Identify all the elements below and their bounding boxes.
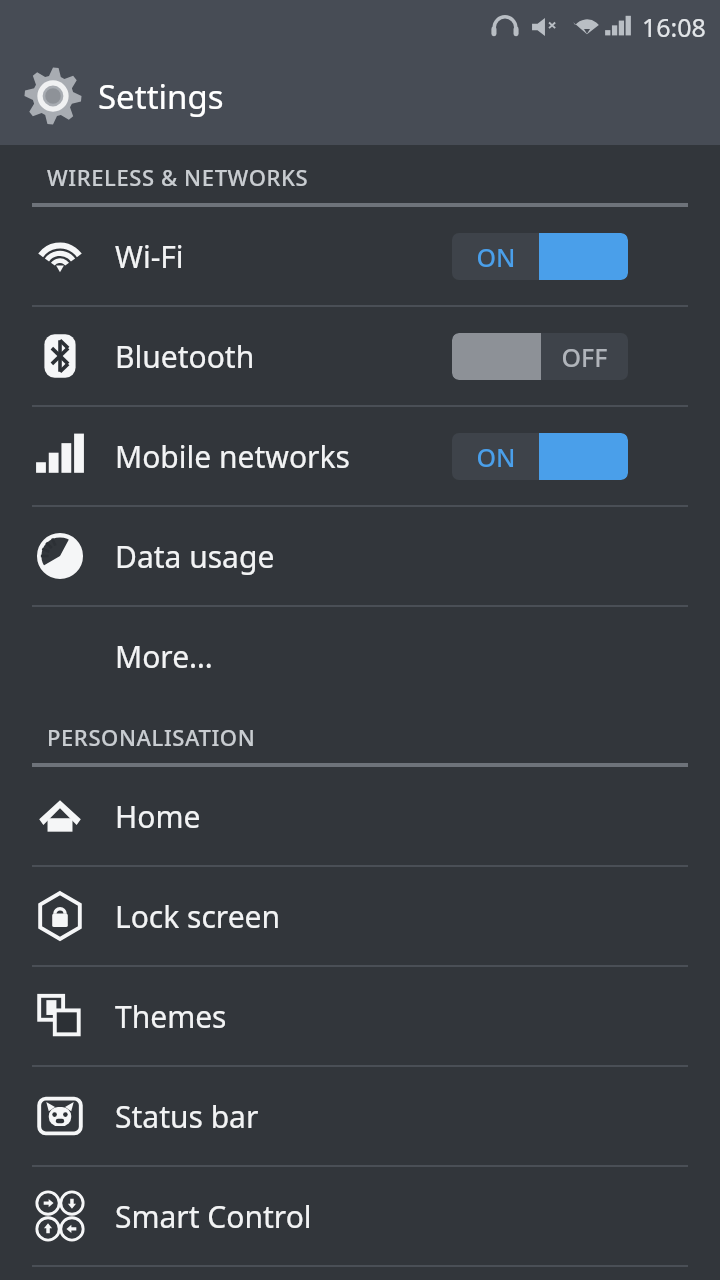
button[interactable]: Lock screen xyxy=(0,867,720,965)
button[interactable]: Toggle on xyxy=(452,233,628,280)
staticText: Bluetooth xyxy=(115,336,255,377)
staticText: Mobile networks xyxy=(115,436,350,477)
button[interactable]: Toggle on xyxy=(452,433,628,480)
staticText: Settings xyxy=(98,74,224,119)
button[interactable]: Home xyxy=(0,767,720,865)
staticText: ON xyxy=(476,440,516,474)
button[interactable]: More… xyxy=(0,607,720,705)
staticText: WIRELESS & NETWORKS xyxy=(47,162,309,192)
staticText: Smart Control xyxy=(115,1196,312,1237)
staticText: Themes xyxy=(115,996,227,1037)
button[interactable]: Mobile networks xyxy=(0,407,720,505)
staticText: Home xyxy=(115,796,201,837)
staticText: PERSONALISATION xyxy=(47,722,256,752)
staticText: 16:08 xyxy=(642,10,706,44)
button[interactable]: Wi-Fi xyxy=(0,207,720,305)
staticText: Data usage xyxy=(115,536,275,577)
staticText: OFF xyxy=(561,340,608,374)
button[interactable]: Smart Control xyxy=(0,1167,720,1265)
staticText: ON xyxy=(476,240,516,274)
button[interactable]: Themes xyxy=(0,967,720,1065)
staticText: Lock screen xyxy=(115,896,281,937)
button[interactable]: Data usage xyxy=(0,507,720,605)
staticText: Status bar xyxy=(115,1096,259,1137)
button[interactable]: Status bar xyxy=(0,1067,720,1165)
staticText: More… xyxy=(115,636,213,677)
staticText: Wi-Fi xyxy=(115,236,184,277)
button[interactable]: Bluetooth xyxy=(0,307,720,405)
button[interactable]: Toggle off xyxy=(452,333,628,380)
